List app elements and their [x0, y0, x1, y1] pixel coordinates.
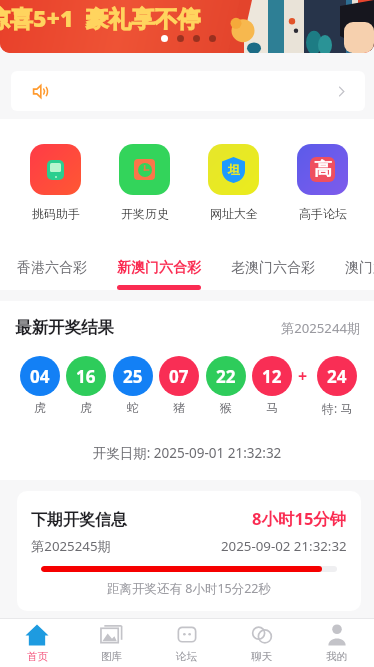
button[interactable]: 开奖历史 [100, 144, 189, 221]
staticText: 04 [30, 365, 50, 388]
other: 论坛 [175, 623, 199, 647]
button[interactable]: 挑码助手 [11, 144, 100, 221]
staticText: 猴 [220, 400, 232, 415]
button[interactable]: 22 [206, 356, 246, 415]
other: Announcements [33, 84, 48, 99]
button[interactable]: 图库 [74, 619, 149, 667]
staticText: 虎 [80, 400, 92, 415]
staticText: 下期开奖信息 [31, 510, 127, 530]
button[interactable]: 聊天 [224, 619, 299, 667]
staticText: + [298, 365, 308, 387]
button[interactable]: 25 [113, 356, 153, 415]
button[interactable]: 高 [278, 144, 367, 221]
button[interactable]: 惊喜5+1 豪礼享不停 [0, 0, 374, 53]
staticText: 新澳门六合彩 [117, 259, 201, 277]
staticText: 高 [314, 158, 332, 181]
staticText: 猪 [173, 400, 185, 415]
button[interactable]: 07 [159, 356, 199, 415]
staticText: 挑码助手 [32, 206, 80, 221]
staticText: 坦 [228, 162, 240, 177]
other: 首页 [25, 623, 49, 647]
other: 我的 [325, 623, 349, 647]
staticText: 07 [169, 365, 189, 388]
staticText: 香港六合彩 [17, 259, 87, 277]
button[interactable]: Announcements [11, 71, 365, 111]
staticText: 25 [123, 365, 143, 388]
button[interactable]: 24 [317, 356, 357, 416]
staticText: 蛇 [127, 400, 139, 415]
staticText: 特: 马 [322, 400, 353, 416]
staticText: 距离开奖还有 8小时15分22秒 [31, 580, 347, 597]
button[interactable]: 坦 [189, 144, 278, 221]
staticText: 8小时15分钟 [252, 507, 347, 530]
staticText: 澳门六合彩 [345, 259, 374, 277]
staticText: 开奖日期: 2025-09-01 21:32:32 [0, 444, 374, 462]
staticText: 我的 [326, 650, 347, 663]
staticText: 高手论坛 [299, 206, 347, 221]
staticText: 图库 [101, 650, 122, 663]
staticText: 聊天 [251, 650, 272, 663]
staticText: 最新开奖结果 [15, 317, 114, 338]
staticText: 论坛 [176, 650, 197, 663]
button[interactable]: 04 [20, 356, 60, 415]
button[interactable]: 下期开奖信息 [17, 491, 361, 611]
button[interactable]: 论坛 [149, 619, 224, 667]
button[interactable]: 新澳门六合彩 [102, 232, 216, 290]
other: 聊天 [250, 623, 274, 647]
staticText: 网址大全 [210, 206, 258, 221]
staticText: 2025-09-02 21:32:32 [221, 537, 347, 555]
staticText: 马 [266, 400, 278, 415]
staticText: 第2025244期 [281, 319, 361, 337]
staticText: 老澳门六合彩 [231, 259, 315, 277]
button[interactable]: 16 [66, 356, 106, 415]
other: 图库 [100, 623, 124, 647]
button[interactable]: 香港六合彩 [2, 232, 102, 290]
staticText: 首页 [27, 650, 48, 663]
staticText: 第2025245期 [31, 537, 111, 555]
staticText: 16 [76, 365, 96, 388]
staticText: 12 [262, 365, 282, 388]
button[interactable]: 澳门六合彩 [330, 232, 374, 290]
button[interactable]: 首页 [0, 619, 74, 667]
staticText: 开奖历史 [121, 206, 169, 221]
button[interactable]: 老澳门六合彩 [216, 232, 330, 290]
staticText: 虎 [34, 400, 46, 415]
button[interactable]: 12 [252, 356, 292, 415]
staticText: 22 [216, 365, 236, 388]
button[interactable]: 我的 [299, 619, 374, 667]
staticText: 惊喜5+1 豪礼享不停 [0, 2, 201, 33]
staticText: 24 [327, 365, 347, 388]
